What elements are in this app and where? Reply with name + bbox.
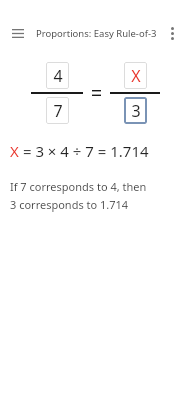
button[interactable]: Open navigation menu xyxy=(4,19,32,47)
button[interactable]: 7 xyxy=(46,97,69,124)
staticText: 3 corresponds to 1.714 xyxy=(10,197,129,212)
staticText: 4 xyxy=(53,65,63,87)
staticText: 3 xyxy=(131,100,141,122)
button[interactable]: 3 xyxy=(124,97,147,124)
staticText: If 7 corresponds to 4, then xyxy=(10,179,147,194)
button[interactable]: X xyxy=(124,62,147,89)
button[interactable]: 4 xyxy=(46,62,69,89)
staticText: Proportions: Easy Rule-of-3 xyxy=(36,27,157,40)
staticText: X xyxy=(131,65,141,87)
staticText: = 3 × 4 ÷ 7 = 1.714 xyxy=(19,141,149,161)
staticText: X xyxy=(10,141,19,161)
staticText: 7 xyxy=(53,100,63,122)
button[interactable]: More options xyxy=(158,19,186,47)
